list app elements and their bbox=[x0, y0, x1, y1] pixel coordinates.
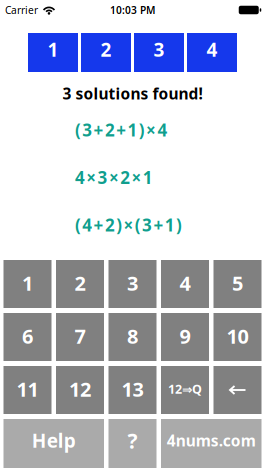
staticText: 7 bbox=[74, 322, 85, 350]
staticText: 4 bbox=[206, 37, 217, 62]
staticText: 4nums.com bbox=[167, 430, 256, 451]
staticText: 5 bbox=[232, 269, 243, 297]
staticText: 3 bbox=[127, 269, 138, 297]
staticText: 12⇒Q bbox=[168, 380, 202, 397]
button[interactable]: 4 bbox=[187, 33, 237, 72]
staticText: (4+2)×(3+1) bbox=[75, 213, 182, 237]
staticText: 10:03 PM bbox=[110, 3, 155, 17]
staticText: 2 bbox=[100, 37, 111, 62]
staticText: 11 bbox=[16, 375, 38, 403]
staticText: 1 bbox=[22, 269, 33, 297]
staticText: 3 solutions found! bbox=[62, 83, 202, 104]
staticText: 4×3×2×1 bbox=[75, 166, 153, 189]
button[interactable]: 3 bbox=[134, 33, 184, 72]
staticText: 1 bbox=[47, 37, 58, 62]
button[interactable]: 4nums.com bbox=[161, 419, 261, 468]
button[interactable]: 9 bbox=[161, 313, 209, 361]
staticText: 9 bbox=[179, 322, 190, 350]
staticText: 8 bbox=[127, 322, 138, 350]
button[interactable]: 6 bbox=[3, 313, 51, 361]
staticText: 3 bbox=[153, 37, 164, 62]
staticText: 10 bbox=[226, 322, 248, 350]
button[interactable]: 2 bbox=[81, 33, 131, 72]
button[interactable]: Delete bbox=[213, 366, 261, 414]
staticText: (3+2+1)×4 bbox=[75, 118, 167, 142]
button[interactable]: 7 bbox=[56, 313, 104, 361]
button[interactable]: 1 bbox=[3, 260, 51, 308]
button[interactable]: ? bbox=[108, 419, 156, 468]
staticText: ? bbox=[127, 426, 137, 455]
staticText: 13 bbox=[121, 375, 143, 403]
button[interactable]: 5 bbox=[213, 260, 261, 308]
button[interactable]: 10 bbox=[213, 313, 261, 361]
staticText: 12 bbox=[69, 375, 91, 403]
staticText: 6 bbox=[22, 322, 33, 350]
button[interactable]: 1 bbox=[28, 33, 78, 72]
button[interactable]: Help bbox=[3, 419, 104, 468]
button[interactable]: 11 bbox=[3, 366, 51, 414]
button[interactable]: 3 bbox=[108, 260, 156, 308]
staticText: 2 bbox=[74, 269, 85, 297]
button[interactable]: 12 bbox=[56, 366, 104, 414]
button[interactable]: 12⇒Q bbox=[161, 366, 209, 414]
button[interactable]: 4 bbox=[161, 260, 209, 308]
staticText: Carrier bbox=[5, 3, 38, 17]
button[interactable]: 13 bbox=[108, 366, 156, 414]
button[interactable]: 8 bbox=[108, 313, 156, 361]
button[interactable]: 2 bbox=[56, 260, 104, 308]
staticText: 4 bbox=[179, 269, 190, 297]
staticText: Help bbox=[32, 428, 76, 453]
